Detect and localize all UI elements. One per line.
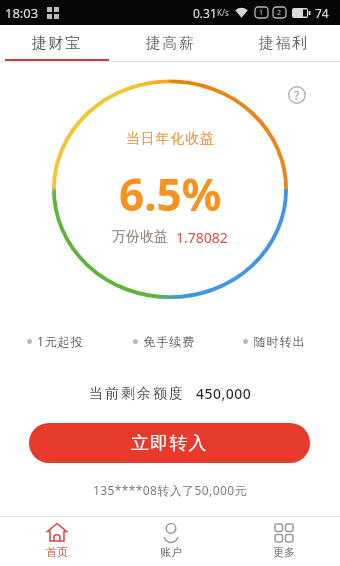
staticText: K/s (217, 7, 229, 18)
staticText: 450,000 (196, 384, 252, 403)
staticText: 首页 (46, 545, 68, 559)
staticText: 18:03 (5, 4, 39, 22)
button[interactable]: 首页 (0, 516, 114, 566)
button[interactable]: 账户 (114, 516, 227, 566)
staticText: ? (294, 87, 300, 103)
button[interactable]: 捷高薪 (114, 25, 227, 62)
staticText: 2 (277, 8, 282, 18)
staticText: 当日年化收益 (126, 130, 215, 148)
staticText: 捷福利 (259, 34, 309, 53)
staticText: 账户 (160, 545, 182, 559)
staticText: 捷财宝 (32, 34, 82, 53)
staticText: 万份收益 (112, 228, 168, 246)
staticText: 0.31 (193, 5, 217, 21)
staticText: 当前剩余额度 (88, 385, 184, 403)
button[interactable]: 立即转入 (29, 423, 310, 463)
staticText: 135****08转入了50,000元 (93, 482, 247, 498)
button[interactable]: 更多 (227, 516, 340, 566)
staticText: 更多 (273, 545, 295, 559)
staticText: 1元起投 (37, 333, 84, 349)
staticText: 免手续费 (143, 334, 195, 349)
button[interactable]: 捷福利 (227, 25, 340, 62)
staticText: 立即转入 (131, 432, 208, 455)
staticText: 捷高薪 (146, 34, 196, 53)
staticText: 6.5% (119, 164, 222, 224)
button[interactable]: ? (288, 86, 306, 104)
staticText: 随时转出 (253, 334, 305, 349)
button[interactable]: 捷财宝 (0, 25, 114, 62)
staticText: 74 (315, 5, 329, 21)
staticText: 1.78082 (176, 228, 228, 247)
staticText: 1 (259, 8, 264, 18)
